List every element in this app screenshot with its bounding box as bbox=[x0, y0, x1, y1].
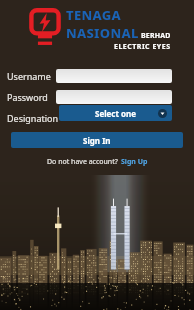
staticText: TENAGA bbox=[66, 6, 121, 24]
button[interactable] bbox=[56, 90, 172, 104]
button[interactable]: Sign Up bbox=[121, 157, 148, 167]
button[interactable]: Sign In bbox=[11, 132, 183, 148]
staticText: Username bbox=[7, 70, 51, 82]
button[interactable] bbox=[56, 69, 172, 83]
staticText: Do not have account? bbox=[47, 157, 118, 167]
staticText: ELECTRIC EYES bbox=[114, 42, 171, 52]
staticText: BERHAD bbox=[141, 31, 171, 41]
staticText: Password bbox=[7, 91, 48, 103]
staticText: Sign In bbox=[83, 135, 111, 146]
staticText: NASIONAL bbox=[66, 24, 139, 42]
staticText: Sign Up bbox=[121, 157, 148, 167]
button[interactable]: Select one bbox=[59, 105, 172, 121]
staticText: Select one bbox=[95, 108, 136, 119]
staticText: Designation bbox=[7, 112, 59, 124]
